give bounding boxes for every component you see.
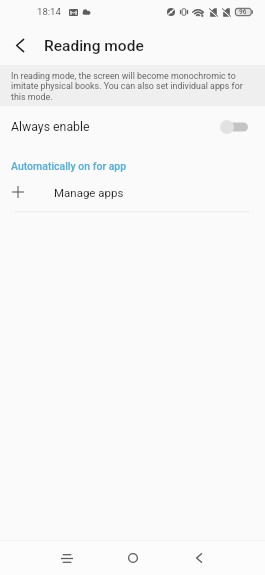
staticText: In reading mode, the screen will become … [11,71,251,103]
button[interactable]: Always enable [0,106,265,147]
button[interactable]: Back [8,33,32,57]
staticText: Manage apps [54,186,124,199]
button[interactable]: Always enable toggle [220,120,248,134]
button[interactable]: Back [177,541,221,575]
button[interactable]: Home [111,541,155,575]
staticText: Always enable [11,120,90,134]
button[interactable]: Manage apps [0,175,265,209]
button[interactable]: Recent apps [45,541,89,575]
staticText: Reading mode [44,37,144,55]
staticText: 96 [239,8,247,16]
staticText: Automatically on for app [11,160,127,172]
staticText: 18:14 [37,6,61,17]
